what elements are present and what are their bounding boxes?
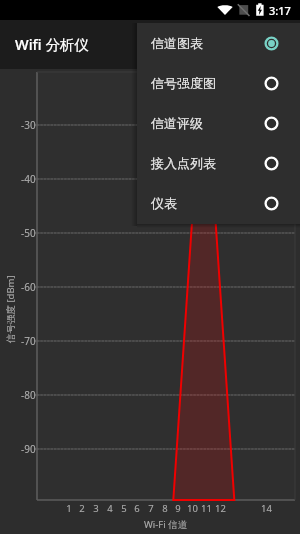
button[interactable]: 仪表 xyxy=(137,183,300,223)
staticText: 2 xyxy=(79,502,85,515)
staticText: Wifi 分析仪 xyxy=(15,34,89,54)
staticText: 信道图表 xyxy=(151,35,203,51)
button[interactable]: 信道评级 xyxy=(137,103,300,143)
staticText: -80 xyxy=(21,388,36,402)
staticText: 4 xyxy=(107,502,113,515)
staticText: Wi-Fi 信道 xyxy=(144,518,188,531)
staticText: 信号强度 [dBm] xyxy=(4,275,17,343)
staticText: 仪表 xyxy=(151,195,177,211)
staticText: 3:17 xyxy=(269,3,291,18)
staticText: -30 xyxy=(21,118,36,132)
button[interactable]: 信道图表 xyxy=(137,23,300,63)
staticText: -40 xyxy=(21,172,36,186)
staticText: -70 xyxy=(21,334,36,348)
staticText: 12 xyxy=(215,502,226,515)
staticText: 11 xyxy=(201,502,212,515)
staticText: 3 xyxy=(93,502,99,515)
staticText: 9 xyxy=(175,502,181,515)
staticText: 信道评级 xyxy=(151,115,203,131)
staticText: -60 xyxy=(21,280,36,294)
staticText: 接入点列表 xyxy=(151,155,216,171)
staticText: 信号强度图 xyxy=(151,75,216,91)
button[interactable]: 信号强度图 xyxy=(137,63,300,103)
staticText: 1 xyxy=(66,502,72,515)
staticText: 7 xyxy=(148,502,154,515)
staticText: 5 xyxy=(121,502,127,515)
staticText: 6 xyxy=(134,502,140,515)
staticText: 8 xyxy=(162,502,168,515)
staticText: 10 xyxy=(187,502,198,515)
button[interactable]: 接入点列表 xyxy=(137,143,300,183)
staticText: 14 xyxy=(261,502,272,515)
staticText: -90 xyxy=(21,442,36,456)
staticText: -50 xyxy=(21,226,36,240)
